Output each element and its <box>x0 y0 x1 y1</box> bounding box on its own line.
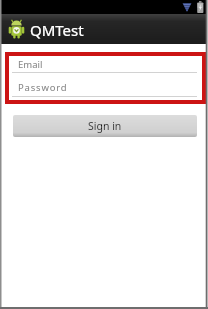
button[interactable]: Sign in <box>13 115 197 137</box>
staticText: Email <box>18 58 43 71</box>
staticText: QMTest <box>30 20 84 40</box>
button[interactable]: Email <box>9 56 202 74</box>
staticText: Password <box>18 81 68 94</box>
button[interactable]: Password <box>9 74 202 97</box>
staticText: Sign in <box>88 119 122 133</box>
